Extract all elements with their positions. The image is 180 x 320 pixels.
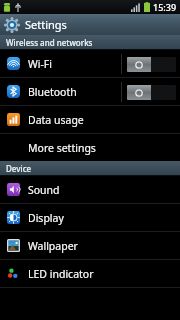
staticText: Data usage <box>28 113 84 127</box>
button[interactable]: LED indicator <box>0 260 180 287</box>
button[interactable]: Data usage <box>0 106 180 133</box>
button[interactable]: Wallpaper <box>0 232 180 259</box>
staticText: Wi-Fi <box>28 57 53 71</box>
button[interactable]: Toggle <box>127 57 176 72</box>
button[interactable]: Toggle <box>127 85 176 100</box>
staticText: Device <box>6 163 32 174</box>
button[interactable]: More settings <box>0 134 180 161</box>
button[interactable]: Wi-Fi <box>0 50 180 77</box>
button[interactable]: Bluetooth <box>0 78 180 105</box>
staticText: Settings <box>25 17 67 32</box>
button[interactable]: Display <box>0 204 180 231</box>
button[interactable]: Settings <box>0 14 180 35</box>
staticText: Display <box>28 211 64 225</box>
button[interactable]: Sound <box>0 176 180 203</box>
staticText: Sound <box>28 183 60 197</box>
staticText: Bluetooth <box>28 85 77 99</box>
staticText: Wallpaper <box>28 239 78 253</box>
staticText: LED indicator <box>28 267 94 281</box>
staticText: More settings <box>28 141 96 155</box>
staticText: Wireless and networks <box>6 37 93 48</box>
staticText: 15:39 <box>153 1 177 13</box>
